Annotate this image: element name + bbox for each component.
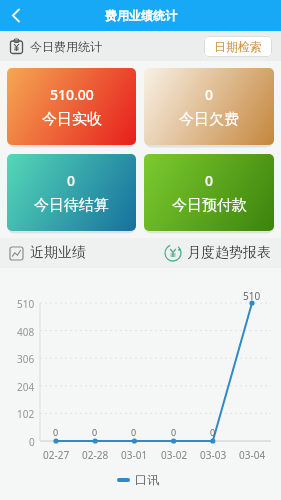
staticText: 0	[29, 435, 35, 449]
button[interactable]	[0, 0, 34, 31]
staticText: 03-04	[239, 448, 266, 462]
staticText: 今日待结算	[34, 196, 109, 215]
staticText: 月度趋势报表	[187, 244, 271, 262]
staticText: 0	[171, 426, 177, 438]
staticText: 03-03	[200, 448, 227, 462]
button[interactable]: 510.00	[7, 68, 136, 145]
staticText: 今日实收	[42, 110, 102, 129]
staticText: 408	[17, 325, 35, 339]
staticText: 近期业绩	[30, 244, 86, 262]
staticText: 0	[67, 171, 76, 190]
staticText: 510	[17, 297, 35, 311]
staticText: 102	[17, 407, 35, 421]
button[interactable]: 日期检索	[204, 36, 272, 57]
staticText: 费用业绩统计	[105, 8, 177, 23]
button[interactable]: 月度趋势报表	[165, 244, 271, 262]
staticText: 0	[210, 426, 216, 438]
staticText: 今日费用统计	[30, 39, 102, 54]
staticText: 02-27	[43, 448, 70, 462]
button[interactable]: 0	[7, 154, 136, 231]
staticText: 0	[131, 426, 137, 438]
staticText: 0	[205, 85, 214, 104]
staticText: 03-01	[121, 448, 148, 462]
staticText: 0	[92, 426, 98, 438]
staticText: 02-28	[82, 448, 109, 462]
staticText: 日期检索	[214, 39, 262, 54]
staticText: 03-02	[161, 448, 188, 462]
staticText: 0	[53, 426, 59, 438]
staticText: 510.00	[50, 85, 94, 104]
staticText: 口讯	[135, 472, 159, 487]
staticText: 今日欠费	[179, 110, 239, 129]
staticText: 204	[17, 380, 35, 394]
staticText: 510	[243, 289, 261, 303]
staticText: 306	[17, 352, 35, 366]
button[interactable]: 0	[144, 154, 274, 231]
staticText: 今日预付款	[172, 196, 247, 215]
staticText: 0	[205, 171, 214, 190]
button[interactable]: 0	[144, 68, 274, 145]
